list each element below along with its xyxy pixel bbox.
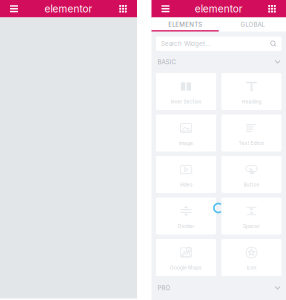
staticText: BASIC: [157, 58, 175, 66]
staticText: Search Widget...: [161, 40, 211, 47]
staticText: Image: [179, 140, 193, 146]
button[interactable]: Search Widget...: [156, 36, 281, 51]
staticText: Divider: [177, 223, 194, 229]
staticText: elementor: [195, 3, 243, 15]
button[interactable]: BASIC: [151, 51, 286, 73]
staticText: Heading: [241, 98, 261, 105]
staticText: GLOBAL: [240, 21, 264, 28]
button[interactable]: Heading: [221, 73, 281, 110]
button[interactable]: Text Editor: [221, 114, 281, 151]
button[interactable]: GLOBAL: [219, 17, 286, 31]
button[interactable]: Spacer: [221, 197, 281, 234]
staticText: elementor: [44, 3, 92, 15]
button[interactable]: Menu: [4, 0, 24, 17]
staticText: Video: [179, 181, 192, 188]
button[interactable]: Button: [221, 156, 281, 193]
staticText: Spacer: [243, 223, 260, 229]
staticText: ELEMENTS: [168, 21, 202, 28]
button[interactable]: Apps: [262, 0, 282, 17]
button[interactable]: PRO: [151, 276, 286, 300]
button[interactable]: Apps: [113, 0, 133, 17]
staticText: Icon: [246, 264, 256, 271]
button[interactable]: Video: [156, 156, 216, 193]
button[interactable]: Image: [156, 114, 216, 151]
staticText: Inner Section: [170, 98, 201, 105]
button[interactable]: Inner Section: [156, 73, 216, 110]
button[interactable]: ELEMENTS: [151, 17, 219, 31]
button[interactable]: Divider: [156, 197, 216, 234]
button[interactable]: Menu: [155, 0, 175, 17]
button[interactable]: Google Maps: [156, 239, 216, 276]
staticText: PRO: [157, 284, 170, 292]
staticText: Button: [243, 181, 259, 188]
button[interactable]: Icon: [221, 239, 281, 276]
staticText: Google Maps: [170, 264, 202, 271]
staticText: Text Editor: [238, 140, 264, 146]
